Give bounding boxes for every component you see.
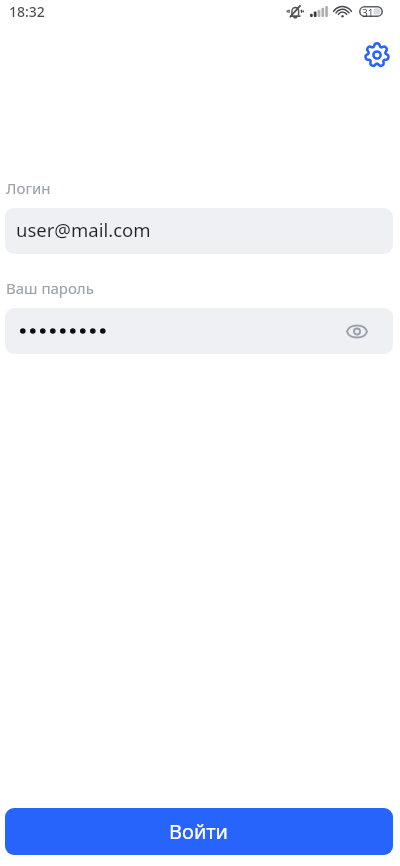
staticText: Логин [6,178,51,198]
button[interactable]: Войти [5,808,393,855]
staticText: 18:32 [9,2,45,21]
staticText: Ваш пароль [6,278,94,298]
staticText: user@mail.com [16,217,151,242]
staticText: Войти [169,818,229,845]
button[interactable]: Show password [340,314,374,348]
staticText: 31 [362,6,374,17]
button[interactable]: Settings [359,37,395,73]
button[interactable]: Show password [5,308,393,354]
button[interactable]: user@mail.com [5,208,393,254]
